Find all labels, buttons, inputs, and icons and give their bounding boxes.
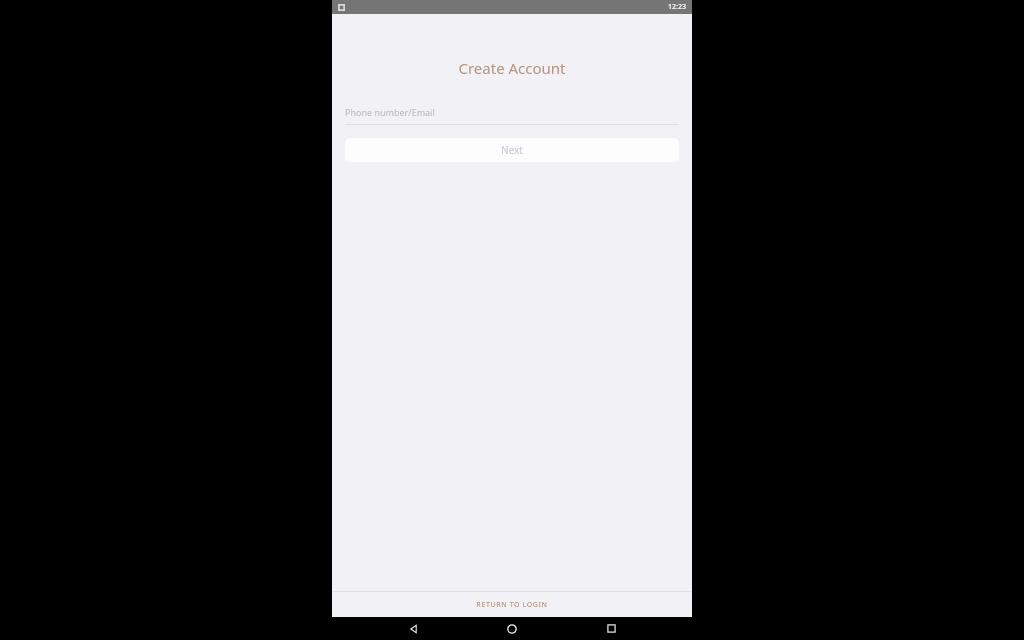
button[interactable]: Home xyxy=(495,617,529,640)
button[interactable]: Back xyxy=(397,617,431,640)
staticText: Phone number/Email xyxy=(345,106,435,118)
button[interactable]: RETURN TO LOGIN xyxy=(332,592,692,617)
staticText: RETURN TO LOGIN xyxy=(476,600,548,610)
button[interactable]: Recent apps xyxy=(594,617,628,640)
staticText: Next xyxy=(501,143,523,157)
staticText: Create Account xyxy=(458,58,566,78)
other: Notification xyxy=(338,4,345,11)
staticText: 12:23 xyxy=(668,2,686,12)
button[interactable]: Next xyxy=(345,138,679,162)
button[interactable]: Phone number/Email xyxy=(345,106,679,125)
